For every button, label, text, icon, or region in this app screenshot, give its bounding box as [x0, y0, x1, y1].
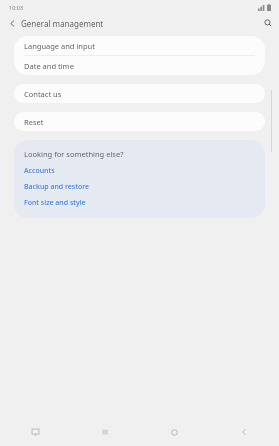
button[interactable]: Accounts	[24, 166, 255, 176]
button[interactable]: Home	[144, 419, 204, 445]
staticText: Backup and restore	[24, 182, 90, 192]
staticText: Contact us	[24, 89, 62, 99]
staticText: Reset	[24, 117, 44, 127]
button[interactable]: Search	[261, 14, 274, 32]
button[interactable]: Contact us	[14, 84, 265, 103]
button[interactable]: Back	[6, 14, 18, 32]
button[interactable]: Backup and restore	[24, 182, 255, 192]
button[interactable]: Reset	[14, 112, 265, 131]
button[interactable]: Language and input	[14, 36, 265, 55]
staticText: Accounts	[24, 166, 55, 176]
staticText: Looking for something else?	[24, 149, 124, 159]
button[interactable]: Font size and style	[24, 198, 255, 208]
staticText: General management	[21, 18, 104, 29]
staticText: 10:03	[9, 4, 24, 11]
button[interactable]: Date and time	[14, 56, 265, 75]
staticText: Language and input	[24, 41, 95, 51]
staticText: Date and time	[24, 61, 74, 71]
button[interactable]: Hide keyboard	[5, 419, 65, 445]
button[interactable]: Recents	[75, 419, 135, 445]
staticText: Font size and style	[24, 198, 86, 208]
